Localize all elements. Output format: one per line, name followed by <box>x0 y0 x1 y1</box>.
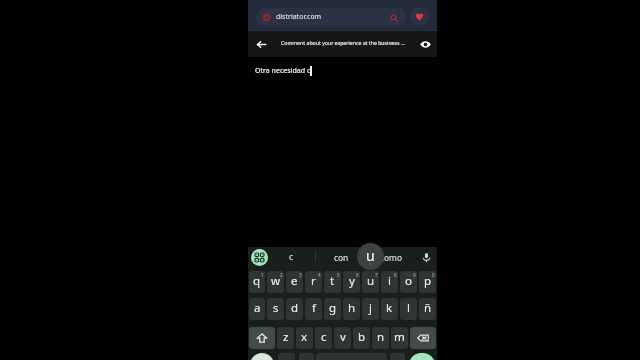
button[interactable]: z <box>277 327 294 349</box>
button[interactable]: f <box>305 298 322 320</box>
staticText: 2 <box>280 272 283 278</box>
button[interactable]: Enter <box>409 353 435 360</box>
button[interactable]: l <box>400 298 417 320</box>
button[interactable]: m <box>391 327 408 349</box>
button[interactable]: Comma <box>299 353 314 360</box>
button[interactable]: k <box>381 298 398 320</box>
button[interactable]: a <box>249 298 265 320</box>
button[interactable]: Search <box>388 12 399 23</box>
button[interactable]: w <box>267 271 284 293</box>
staticText: r <box>311 273 316 289</box>
staticText: 0 <box>432 272 435 278</box>
button[interactable]: o <box>400 271 417 293</box>
staticText: j <box>369 300 372 316</box>
staticText: g <box>329 300 337 316</box>
button[interactable]: r <box>305 271 322 293</box>
staticText: l <box>407 300 410 316</box>
button[interactable]: t <box>324 271 341 293</box>
staticText: Comment about your experience at the bus… <box>281 39 406 46</box>
button[interactable]: n <box>372 327 389 349</box>
staticText: m <box>394 329 405 345</box>
staticText: 6 <box>356 272 359 278</box>
button[interactable]: Symbols <box>278 353 295 360</box>
staticText: 8 <box>394 272 397 278</box>
button[interactable]: c <box>269 247 311 271</box>
staticText: 7 <box>369 262 372 268</box>
button[interactable]: x <box>296 327 313 349</box>
button[interactable]: Voice input <box>418 249 434 265</box>
button[interactable]: Shift <box>249 327 275 349</box>
staticText: i <box>388 273 391 289</box>
staticText: x <box>301 329 308 345</box>
staticText: 7 <box>375 272 378 278</box>
staticText: y <box>349 273 355 289</box>
staticText: e <box>291 273 298 289</box>
button[interactable]: Period <box>390 353 405 360</box>
staticText: a <box>254 300 261 316</box>
staticText: 9 <box>413 272 416 278</box>
button[interactable]: distriator.com <box>256 8 407 26</box>
button[interactable]: Emoji <box>250 353 274 360</box>
staticText: u <box>366 246 375 265</box>
button[interactable]: i <box>381 271 398 293</box>
staticText: v <box>340 329 346 345</box>
button[interactable]: b <box>353 327 370 349</box>
staticText: n <box>377 329 385 345</box>
staticText: 4 <box>318 272 321 278</box>
staticText: b <box>358 329 366 345</box>
button[interactable]: Back <box>252 35 270 53</box>
staticText: f <box>312 300 316 316</box>
button[interactable]: u <box>362 271 379 293</box>
button[interactable]: v <box>334 327 351 349</box>
staticText: distriator.com <box>276 12 322 22</box>
staticText: 5 <box>337 272 340 278</box>
button[interactable]: e <box>286 271 303 293</box>
staticText: con <box>334 252 349 263</box>
button[interactable]: s <box>267 298 284 320</box>
button[interactable]: Keyboard toolbar <box>251 249 268 266</box>
staticText: p <box>424 273 432 289</box>
staticText: 3 <box>299 272 302 278</box>
button[interactable]: Preview <box>416 35 434 53</box>
staticText: 1 <box>261 272 264 278</box>
staticText: c <box>289 251 294 263</box>
button[interactable]: ñ <box>419 298 436 320</box>
button[interactable]: c <box>315 327 332 349</box>
staticText: s <box>273 300 279 316</box>
button[interactable]: p <box>419 271 436 293</box>
button[interactable]: h <box>343 298 360 320</box>
button[interactable]: con <box>315 247 367 271</box>
staticText: u <box>367 273 375 289</box>
staticText: ñ <box>424 300 432 316</box>
staticText: c <box>321 329 327 345</box>
button[interactable]: Backspace <box>410 327 436 349</box>
button[interactable]: d <box>286 298 303 320</box>
button[interactable]: y <box>343 271 360 293</box>
staticText: d <box>291 300 299 316</box>
button[interactable]: Favorites <box>410 7 429 26</box>
staticText: Otra necesidad c <box>255 65 311 75</box>
staticText: o <box>405 273 412 289</box>
staticText: z <box>283 329 289 345</box>
button[interactable]: j <box>362 298 379 320</box>
staticText: q <box>253 273 261 289</box>
staticText: k <box>386 300 393 316</box>
staticText: h <box>348 300 356 316</box>
button[interactable]: g <box>324 298 341 320</box>
button[interactable]: q <box>249 271 265 293</box>
staticText: como <box>380 252 403 263</box>
staticText: t <box>330 273 335 289</box>
staticText: w <box>271 273 281 289</box>
button[interactable]: como <box>365 247 417 271</box>
